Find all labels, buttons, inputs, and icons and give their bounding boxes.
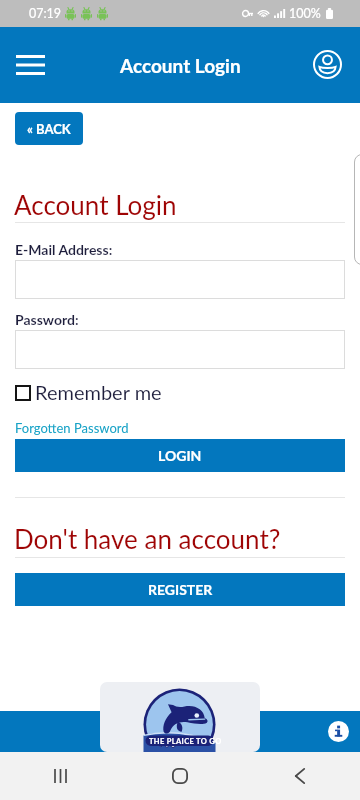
staticText: Remember me <box>35 380 162 404</box>
button[interactable]: Open navigation menu <box>6 41 54 89</box>
button[interactable]: Remember me <box>15 381 162 405</box>
button[interactable]: Home <box>156 752 204 800</box>
staticText: LOGIN <box>158 447 202 464</box>
button[interactable]: Account <box>303 40 351 88</box>
staticText: Password: <box>15 311 79 328</box>
staticText: 07:19 <box>29 6 62 21</box>
button[interactable]: Recent apps <box>36 752 84 800</box>
staticText: E-Mail Address: <box>15 241 113 258</box>
button[interactable]: REGISTER <box>15 573 345 606</box>
staticText: Account Login <box>120 54 241 77</box>
staticText: Don't have an account? <box>14 523 281 554</box>
button[interactable]: LOGIN <box>15 439 345 472</box>
button[interactable]: « BACK <box>15 112 83 145</box>
button[interactable]: Forgotten Password <box>15 420 129 436</box>
staticText: « BACK <box>27 121 71 137</box>
button[interactable]: Information <box>328 721 349 742</box>
staticText: REGISTER <box>148 581 213 598</box>
staticText: 100% <box>289 6 321 21</box>
staticText: THE PLAICE TO GO <box>149 737 222 746</box>
staticText: Account Login <box>14 189 177 220</box>
button[interactable]: Back <box>276 752 324 800</box>
